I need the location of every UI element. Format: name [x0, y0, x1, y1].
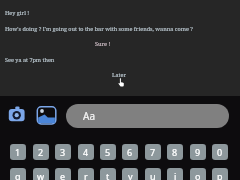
button[interactable]: y: [122, 168, 138, 180]
button[interactable]: 1: [10, 144, 26, 160]
staticText: Later: [112, 71, 126, 78]
staticText: See ya at 7pm then: [5, 56, 55, 63]
staticText: Aa: [83, 109, 95, 123]
staticText: 5: [105, 146, 111, 158]
staticText: q: [15, 170, 21, 180]
button[interactable]: Later: [112, 71, 126, 78]
button[interactable]: i: [167, 168, 183, 180]
button[interactable]: e: [55, 168, 71, 180]
staticText: e: [60, 170, 66, 180]
staticText: 0: [217, 146, 223, 158]
button[interactable]: 0: [212, 144, 228, 160]
staticText: 2: [38, 146, 44, 158]
staticText: r: [84, 170, 88, 180]
staticText: o: [195, 170, 201, 180]
button[interactable]: o: [190, 168, 206, 180]
staticText: 9: [195, 146, 201, 158]
button[interactable]: w: [33, 168, 49, 180]
staticText: Sure !: [95, 40, 111, 47]
staticText: u: [150, 170, 156, 180]
staticText: 3: [60, 146, 66, 158]
staticText: i: [174, 170, 177, 180]
button[interactable]: 7: [145, 144, 161, 160]
staticText: 7: [150, 146, 156, 158]
button[interactable]: 4: [78, 144, 94, 160]
staticText: 6: [127, 146, 133, 158]
button[interactable]: Open camera: [7, 104, 26, 125]
staticText: Hey girl !: [5, 9, 30, 16]
staticText: 4: [83, 146, 89, 158]
staticText: w: [37, 170, 45, 180]
staticText: 8: [172, 146, 178, 158]
button[interactable]: 5: [100, 144, 116, 160]
staticText: How's doing ? I'm going out to the bar w…: [5, 25, 193, 32]
button[interactable]: r: [78, 168, 94, 180]
button[interactable]: 9: [190, 144, 206, 160]
button[interactable]: u: [145, 168, 161, 180]
staticText: y: [128, 170, 133, 180]
staticText: 1: [15, 146, 21, 158]
staticText: p: [217, 170, 223, 180]
button[interactable]: 3: [55, 144, 71, 160]
staticText: t: [106, 170, 110, 180]
button[interactable]: 8: [167, 144, 183, 160]
button[interactable]: t: [100, 168, 116, 180]
button[interactable]: q: [10, 168, 26, 180]
button[interactable]: 2: [33, 144, 49, 160]
button[interactable]: 6: [122, 144, 138, 160]
button[interactable]: p: [212, 168, 228, 180]
button[interactable]: Aa: [66, 104, 229, 128]
button[interactable]: Open gallery: [36, 105, 57, 125]
